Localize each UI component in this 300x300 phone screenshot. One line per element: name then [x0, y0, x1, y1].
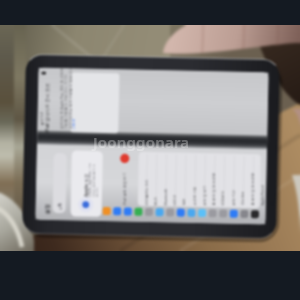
- staticText: Bluetooth: [162, 188, 167, 205]
- staticText: 습니다.: [95, 187, 99, 197]
- staticText: 배경화면: [220, 190, 225, 205]
- staticText: 검색: [57, 202, 62, 210]
- staticText: 에어플레인 모드: [143, 178, 148, 205]
- staticText: 화면 시간: [230, 189, 235, 205]
- staticText: Wi-Fi: [152, 196, 157, 205]
- staticText: 홈 화면 및 앱 보관함: [210, 172, 215, 205]
- staticText: iPad 설정 완료하기: [121, 172, 126, 205]
- staticText: 설정: [43, 203, 50, 214]
- staticText: iCloud+, App Store, 기타: [88, 163, 92, 197]
- staticText: 오후 9:41: [40, 111, 44, 125]
- staticText: 업데이트되는 동안 사용할 수 없습니다.: [67, 66, 72, 129]
- staticText: 나중에: [71, 118, 76, 129]
- staticText: 화면 및 밝기: [201, 185, 206, 205]
- staticText: Apple 계정: [83, 173, 89, 197]
- staticText: Joonggonara: [93, 132, 190, 152]
- staticText: Apple Pencil: [259, 184, 264, 205]
- staticText: 서비스 등에 접속할 수 있: [92, 163, 96, 197]
- staticText: 일반: [181, 197, 186, 205]
- staticText: 손쉬운 사용: [191, 186, 196, 205]
- staticText: iPad 업데이트 준비 완료: [44, 82, 50, 133]
- staticText: 홈 화면 및 앱 보관함: [249, 172, 254, 205]
- staticText: 업데이트 후 Apple Pay, 메모 등 새로운: [58, 67, 63, 129]
- staticText: 개인정보: [240, 190, 245, 205]
- staticText: 배터리: [172, 194, 177, 205]
- staticText: 기능을 사용할 수 있습니다. 기기가: [62, 73, 67, 129]
